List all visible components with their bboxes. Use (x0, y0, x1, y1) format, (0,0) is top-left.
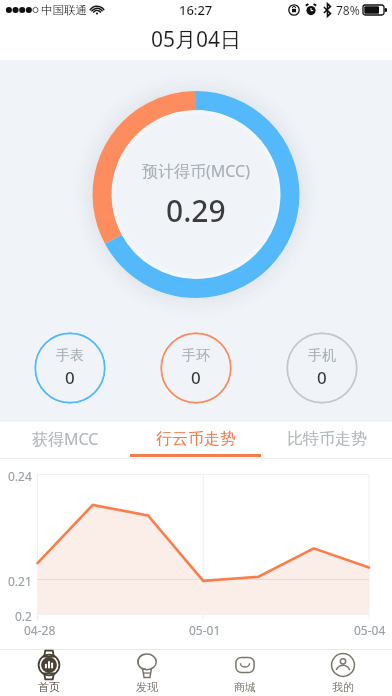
staticText: 0 (317, 366, 327, 389)
button[interactable]: Home (0, 650, 98, 696)
staticText: 05-01 (189, 622, 221, 637)
staticText: 手机 (308, 347, 336, 365)
button[interactable]: Profile (294, 650, 392, 696)
staticText: 我的 (332, 680, 354, 694)
button[interactable]: 手环 (160, 332, 232, 404)
staticText: 16:27 (179, 1, 213, 19)
staticText: 比特币走势 (287, 429, 367, 449)
staticText: 0.2 (15, 608, 32, 624)
staticText: 手环 (182, 347, 210, 365)
staticText: 05月04日 (151, 25, 242, 54)
staticText: 0.21 (8, 573, 32, 589)
staticText: 获得MCC (32, 428, 99, 450)
staticText: 商城 (234, 680, 256, 694)
button[interactable]: Discover (98, 650, 196, 696)
staticText: 预计得币(MCC) (142, 160, 251, 182)
staticText: 手表 (56, 347, 84, 365)
staticText: 05-04 (354, 622, 386, 637)
staticText: 发现 (136, 680, 158, 694)
staticText: 0.24 (8, 468, 32, 484)
staticText: 78% (336, 2, 360, 18)
button[interactable]: 手机 (286, 332, 358, 404)
staticText: 04-28 (24, 622, 56, 637)
staticText: 0 (191, 366, 201, 389)
staticText: 0.29 (166, 190, 226, 231)
button[interactable]: 行云币走势 (130, 422, 261, 459)
button[interactable]: 获得MCC (0, 422, 130, 459)
staticText: 0 (65, 366, 75, 389)
staticText: 行云币走势 (156, 429, 236, 449)
staticText: 首页 (38, 680, 60, 694)
button[interactable]: Mall (196, 650, 294, 696)
staticText: 中国联通 (41, 3, 87, 17)
button[interactable]: 比特币走势 (261, 422, 392, 459)
button[interactable]: 手表 (34, 332, 106, 404)
